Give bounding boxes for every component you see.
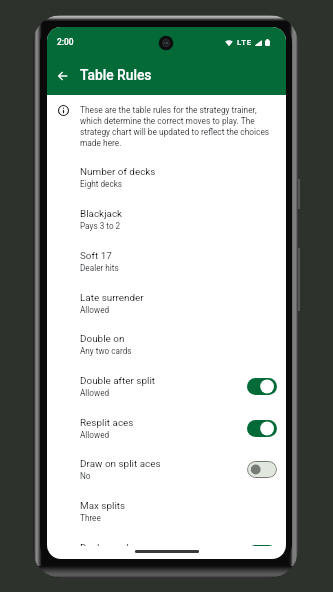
staticText: Allowed xyxy=(80,430,110,440)
staticText: Dealer hits xyxy=(80,263,119,273)
button[interactable]: Double after split xyxy=(47,365,286,407)
staticText: Pays 3 to 2 xyxy=(80,221,121,231)
staticText: Number of decks xyxy=(80,166,156,178)
staticText: Any two cards xyxy=(80,346,132,356)
button[interactable]: Resplit aces xyxy=(47,407,286,449)
button[interactable]: Max splits xyxy=(47,490,286,532)
button[interactable]: Dealer peeks xyxy=(47,532,286,546)
staticText: Late surrender xyxy=(80,292,144,304)
button[interactable]: Late surrender xyxy=(47,282,286,324)
button[interactable]: Off xyxy=(247,461,277,478)
staticText: No xyxy=(80,471,91,481)
staticText: Double after split xyxy=(80,375,156,387)
button[interactable]: On xyxy=(247,545,277,546)
staticText: Draw on split aces xyxy=(80,458,161,470)
staticText: Allowed xyxy=(80,388,110,398)
button[interactable]: On xyxy=(247,378,277,395)
staticText: Eight decks xyxy=(80,179,123,189)
staticText: Three xyxy=(80,513,101,523)
staticText: These are the table rules for the strate… xyxy=(80,104,272,148)
staticText: Allowed xyxy=(80,305,110,315)
button[interactable]: Back xyxy=(49,62,77,90)
button[interactable]: Number of decks xyxy=(47,156,286,198)
staticText: Dealer peeks xyxy=(80,542,137,546)
staticText: Resplit aces xyxy=(80,417,134,429)
button[interactable]: Double on xyxy=(47,323,286,365)
button[interactable]: Draw on split aces xyxy=(47,448,286,490)
staticText: Double on xyxy=(80,333,125,345)
staticText: LTE xyxy=(237,38,253,47)
staticText: Max splits xyxy=(80,500,126,512)
button[interactable]: On xyxy=(247,420,277,437)
staticText: Soft 17 xyxy=(80,250,112,262)
button[interactable]: Blackjack xyxy=(47,198,286,240)
staticText: Table Rules xyxy=(80,67,152,83)
staticText: Blackjack xyxy=(80,208,123,220)
button[interactable]: Soft 17 xyxy=(47,240,286,282)
staticText: 2:00 xyxy=(57,37,74,47)
